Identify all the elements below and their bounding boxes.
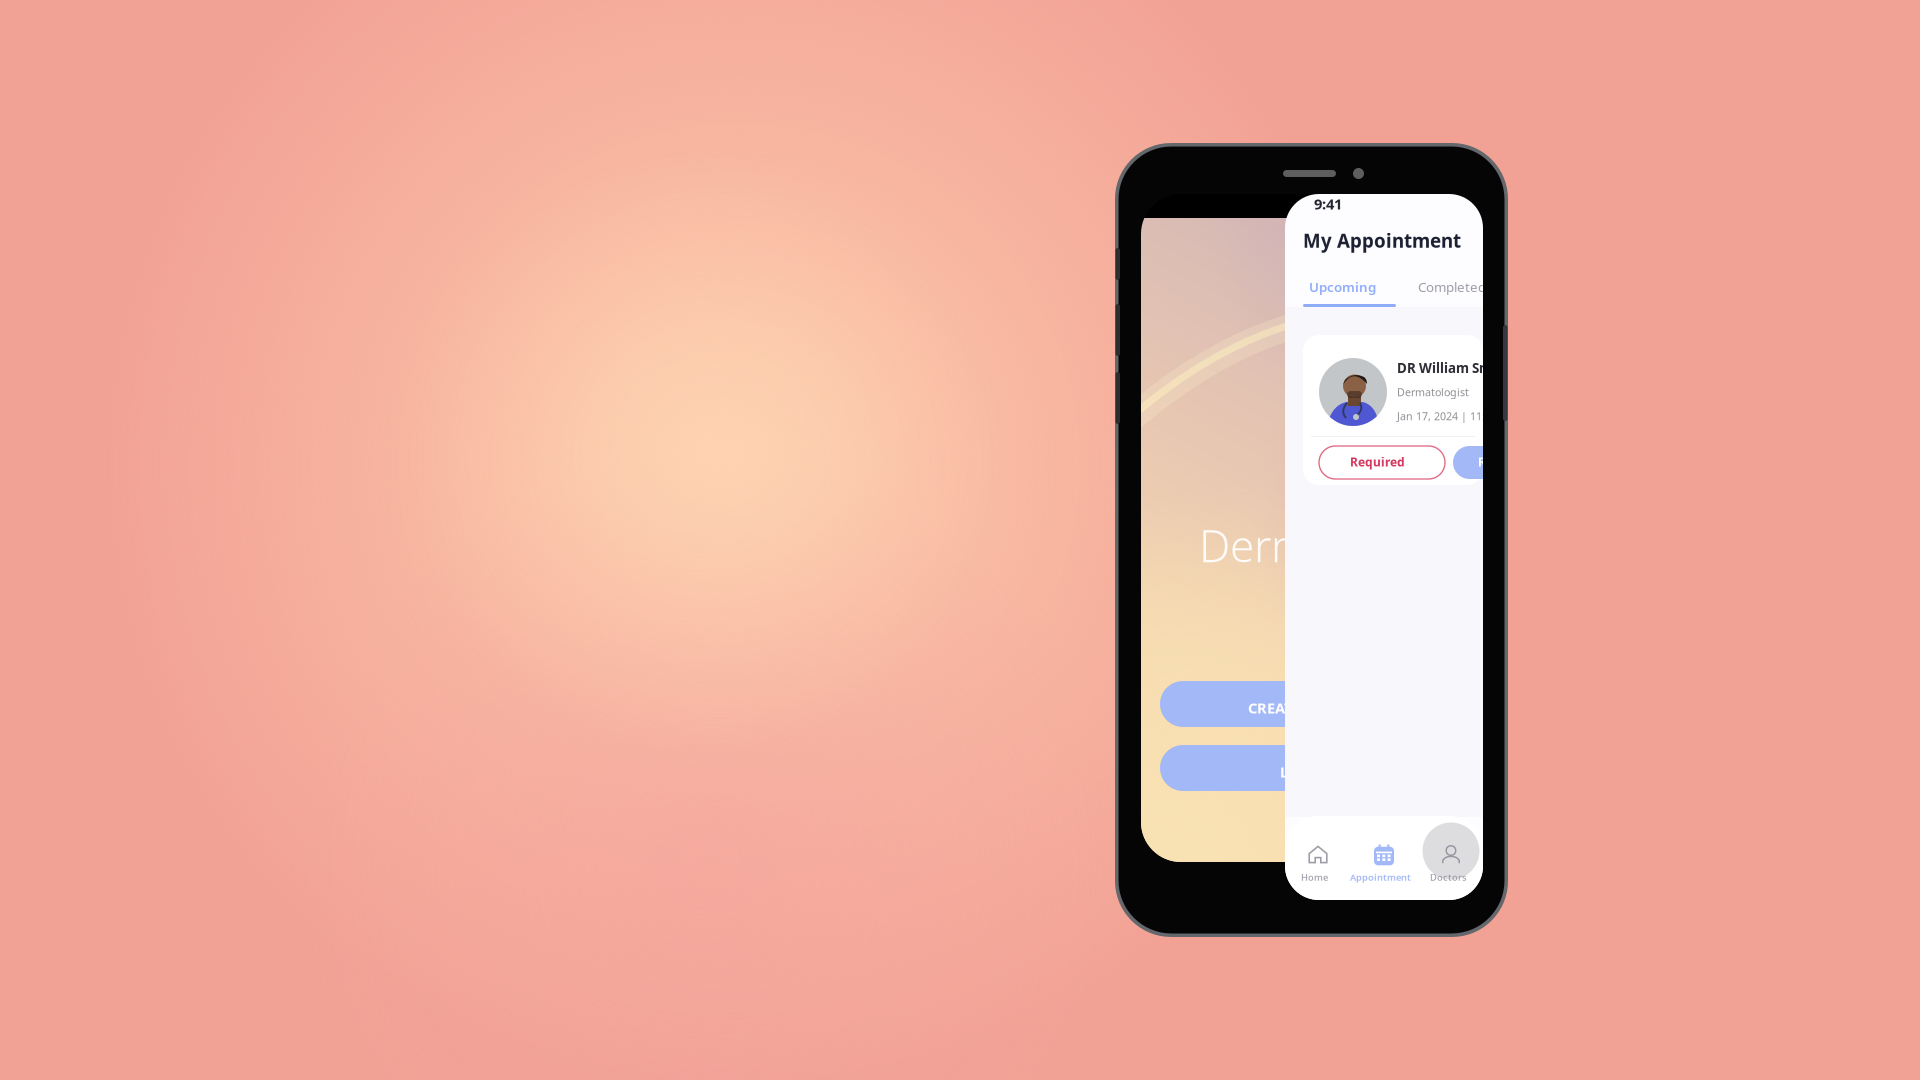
staticText: Reschedule xyxy=(1478,454,1547,470)
staticText: 9:41 xyxy=(1314,194,1342,213)
button[interactable]: Reschedule xyxy=(1453,446,1579,479)
button[interactable]: Upcoming xyxy=(1303,271,1396,305)
button[interactable]: LOG IN xyxy=(1160,745,1438,791)
button[interactable]: Home xyxy=(1294,835,1342,891)
staticText: Home xyxy=(1301,871,1328,883)
staticText: DR William Smith xyxy=(1397,359,1511,377)
staticText: Completed xyxy=(1418,278,1486,296)
staticText: Jan 17, 2024 | 11:00 xyxy=(1397,409,1497,423)
staticText: LOG IN xyxy=(1280,762,1333,781)
staticText: Upcoming xyxy=(1309,278,1376,296)
button[interactable]: Doctors xyxy=(1425,835,1477,891)
staticText: Required xyxy=(1350,454,1405,470)
staticText: CREATE ACCOUNT xyxy=(1248,698,1375,717)
staticText: Derma xyxy=(1199,516,1334,574)
staticText: My Appointment xyxy=(1303,228,1461,253)
button[interactable]: Required xyxy=(1319,446,1445,479)
button[interactable]: Appointment xyxy=(1347,835,1421,891)
button[interactable]: Completed xyxy=(1416,271,1519,305)
staticText: Appointment xyxy=(1350,871,1411,883)
staticText: Dermatologist xyxy=(1397,385,1469,399)
staticText: Doctors xyxy=(1430,871,1467,883)
button[interactable]: CREATE ACCOUNT xyxy=(1160,681,1438,727)
